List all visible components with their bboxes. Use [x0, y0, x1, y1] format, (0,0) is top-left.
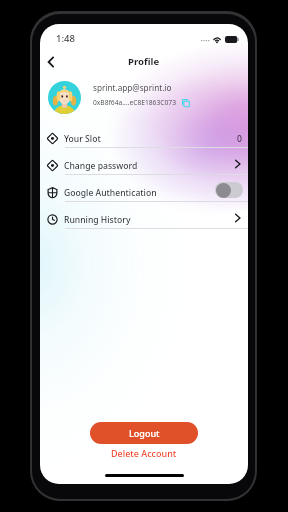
button[interactable]: Your Slot: [40, 121, 248, 148]
staticText: 0xB8f64a....eC8E1863C073: [93, 98, 176, 107]
staticText: 0: [237, 133, 242, 145]
staticText: sprint.app@sprint.io: [93, 82, 172, 93]
staticText: Change password: [64, 160, 138, 172]
button[interactable]: Google Authentication toggle: [215, 182, 243, 198]
staticText: 1:48: [56, 32, 75, 45]
button[interactable]: Google Authentication: [40, 175, 248, 202]
button[interactable]: Running History: [40, 202, 248, 229]
staticText: Profile: [128, 55, 160, 68]
button[interactable]: Delete Account: [105, 446, 183, 460]
staticText: Logout: [129, 427, 160, 439]
button[interactable]: Logout: [90, 422, 198, 444]
button[interactable]: Change password: [40, 148, 248, 175]
staticText: Delete Account: [111, 447, 177, 459]
staticText: Running History: [64, 214, 131, 226]
staticText: Your Slot: [64, 133, 101, 145]
button[interactable]: Copy wallet address: [180, 97, 191, 108]
button[interactable]: Back: [40, 51, 62, 73]
staticText: Google Authentication: [64, 187, 157, 199]
